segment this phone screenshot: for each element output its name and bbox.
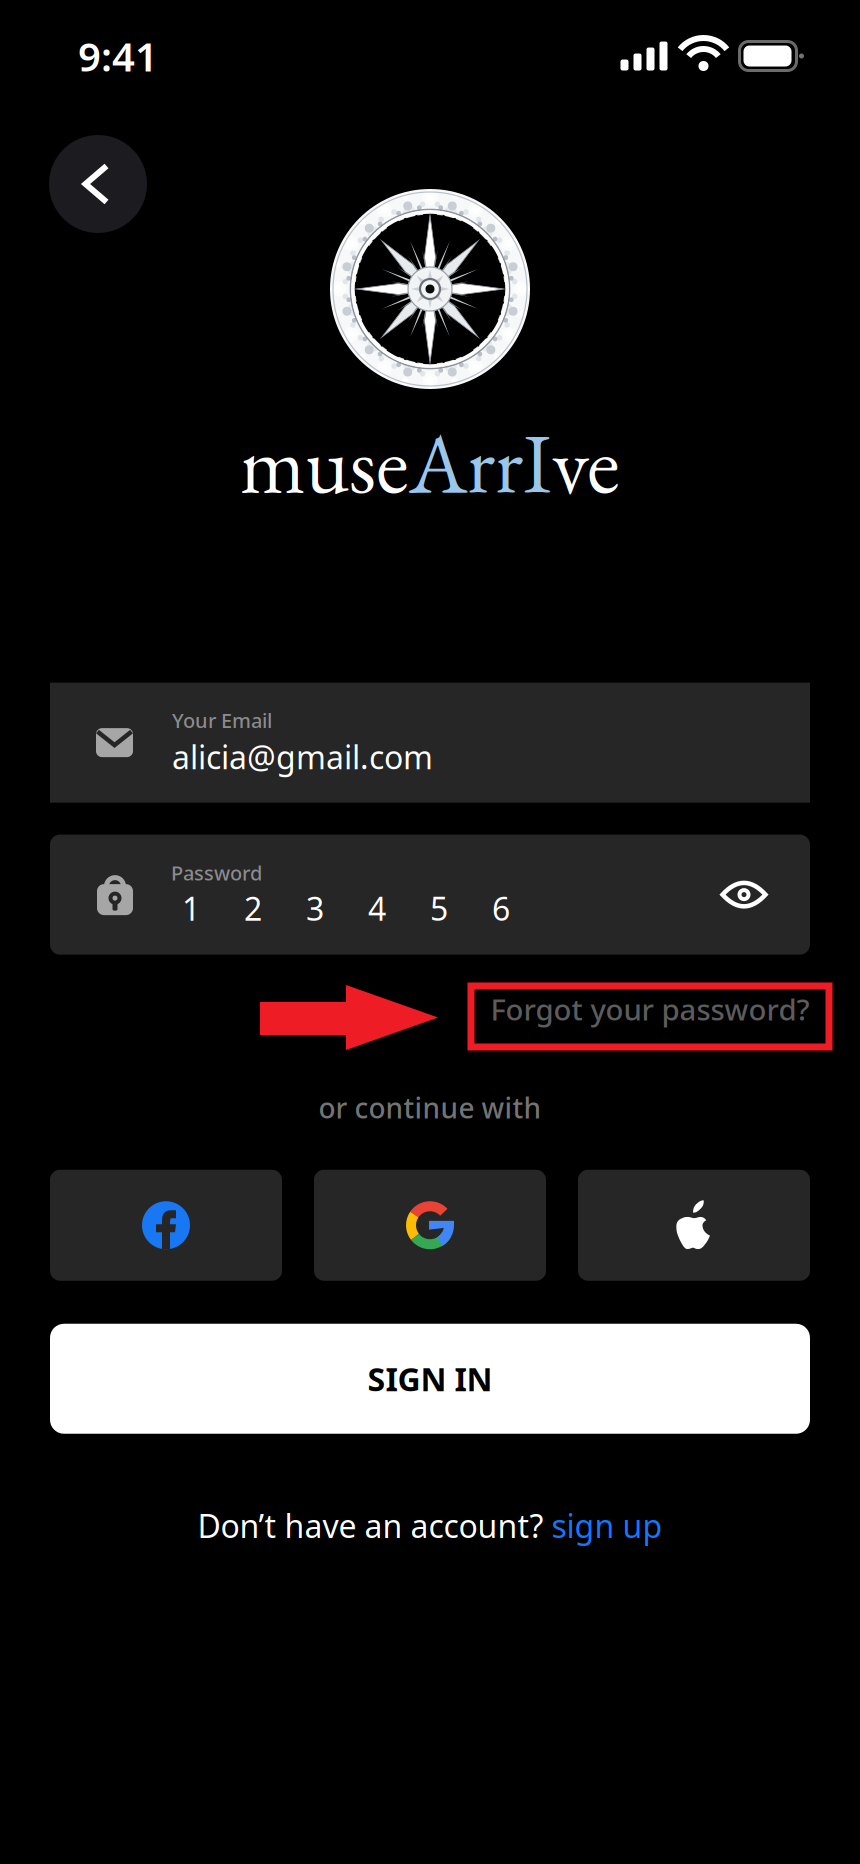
button[interactable]: Forgot your password?: [471, 979, 829, 1040]
staticText: alicia@gmail.com: [172, 735, 433, 778]
staticText: or continue with: [318, 1089, 541, 1127]
staticText: Your Email: [172, 707, 272, 734]
staticText: sign up: [543, 1504, 662, 1547]
staticText: Password: [171, 859, 262, 886]
staticText: 5: [430, 886, 448, 930]
staticText: SIGN IN: [367, 1357, 492, 1401]
staticText: 2: [244, 886, 262, 930]
button[interactable]: sign up: [543, 1504, 662, 1547]
button[interactable]: Back: [49, 135, 147, 233]
staticText: 3: [306, 886, 324, 930]
staticText: 1: [182, 886, 200, 930]
staticText: 4: [368, 886, 386, 930]
staticText: 6: [492, 886, 510, 930]
staticText: Forgot your password?: [490, 989, 809, 1029]
staticText: ArrI: [409, 408, 552, 518]
staticText: muse: [240, 408, 409, 518]
button[interactable]: Show password: [700, 851, 788, 939]
button[interactable]: Continue with Google: [314, 1170, 546, 1281]
button[interactable]: Continue with Apple: [578, 1170, 810, 1281]
staticText: Don’t have an account?: [197, 1504, 543, 1547]
staticText: ve: [552, 408, 620, 518]
staticText: 9:41: [78, 29, 158, 83]
button[interactable]: SIGN IN: [50, 1324, 810, 1434]
button[interactable]: Continue with Facebook: [50, 1170, 282, 1281]
